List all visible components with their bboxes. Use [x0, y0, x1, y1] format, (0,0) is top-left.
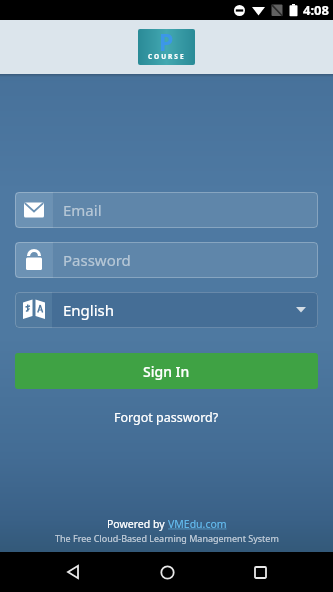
button[interactable]: Powered by: [107, 517, 227, 531]
staticText: VMEdu.com: [168, 517, 227, 531]
staticText: Sign In: [143, 362, 190, 381]
button[interactable]: Email: [15, 192, 318, 228]
button[interactable]: [147, 552, 187, 592]
button[interactable]: [53, 552, 93, 592]
staticText: 4:08: [303, 1, 329, 19]
staticText: Password: [63, 250, 131, 270]
button[interactable]: Password: [15, 242, 318, 278]
staticText: The Free Cloud-Based Learning Management…: [55, 532, 279, 544]
staticText: English: [63, 300, 115, 320]
staticText: P: [159, 29, 174, 57]
button[interactable]: Sign In: [15, 353, 318, 389]
button[interactable]: [240, 552, 280, 592]
button[interactable]: English: [15, 292, 318, 328]
staticText: Forgot password?: [114, 409, 219, 426]
staticText: Powered by: [107, 517, 168, 531]
button[interactable]: Forgot password?: [110, 405, 223, 430]
staticText: COURSE: [148, 52, 186, 61]
staticText: Email: [63, 200, 102, 220]
